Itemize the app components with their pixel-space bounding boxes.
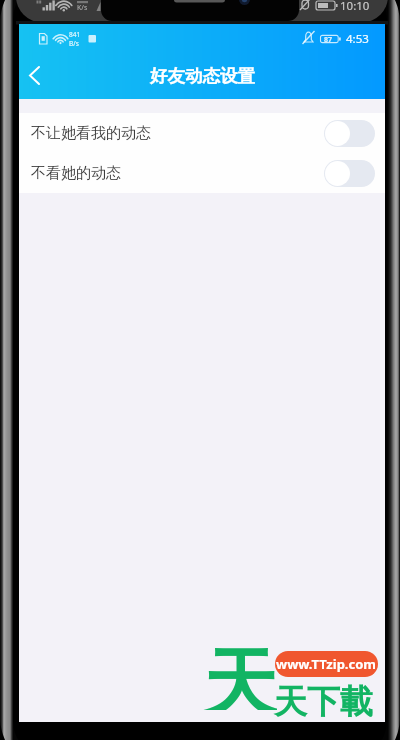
staticText: www.TTzip.com <box>276 655 377 673</box>
staticText: 不看她的动态 <box>31 164 121 183</box>
staticText: 天 <box>203 638 277 710</box>
staticText: 10:10 <box>340 0 370 14</box>
button[interactable]: 不让她看我的动态 <box>19 113 385 153</box>
button[interactable]: 不看她的动态 <box>19 153 385 193</box>
staticText: 天下載 <box>274 681 373 723</box>
button[interactable]: Toggle <box>324 160 375 187</box>
staticText: 不让她看我的动态 <box>31 124 151 143</box>
staticText: B/s <box>69 39 79 48</box>
button[interactable]: Back <box>19 57 49 93</box>
button[interactable]: Toggle <box>324 120 375 147</box>
staticText: 87 <box>324 35 333 45</box>
staticText: 4:53 <box>346 31 369 47</box>
staticText: 好友动态设置 <box>150 65 255 87</box>
staticText: K/s <box>77 3 88 13</box>
staticText: 841 <box>69 30 81 39</box>
